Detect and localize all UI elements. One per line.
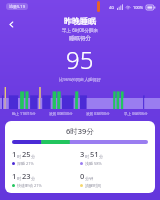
staticText: 流量5.19 <box>9 4 25 9</box>
staticText: 0 <box>80 171 85 181</box>
staticText: 25 <box>22 149 31 159</box>
staticText: 23 <box>22 171 31 181</box>
staticText: 比96%的同龄人睡得好 <box>59 77 101 83</box>
staticText: 3 <box>80 149 85 159</box>
staticText: 早上 06时06分 <box>124 111 148 116</box>
staticText: 晚上 11时15分 <box>12 111 36 116</box>
staticText: 1 <box>12 171 17 181</box>
button[interactable]: 1 <box>12 171 80 188</box>
staticText: 1 <box>12 149 17 159</box>
button[interactable]: 0 <box>80 171 148 188</box>
button[interactable]: 1 <box>12 149 80 166</box>
staticText: 昨晚睡眠 <box>64 16 96 26</box>
staticText: 凌晨 00时30分 <box>49 111 73 116</box>
staticText: 清醒时间 <box>85 183 101 188</box>
button[interactable]: 3 <box>80 149 148 166</box>
staticText: 快速眼动 21% <box>17 183 42 188</box>
staticText: 100% <box>133 5 144 10</box>
staticText: 95 <box>66 43 94 76</box>
staticText: 51 <box>90 149 99 159</box>
button[interactable]: Back <box>3 16 19 32</box>
staticText: 分 <box>99 154 104 159</box>
staticText: 浅睡 58% <box>85 161 102 166</box>
staticText: 分 <box>31 154 36 159</box>
staticText: 深睡 21% <box>17 161 34 166</box>
staticText: 6时39分 <box>66 126 94 136</box>
staticText: 凌晨 03时00分 <box>86 111 110 116</box>
staticText: 时 <box>85 154 90 159</box>
staticText: 早上 6时06分醒来 <box>62 27 98 33</box>
staticText: 4G <box>109 5 115 10</box>
staticText: 睡眠得分 <box>69 35 91 42</box>
staticText: 分钟 <box>85 176 94 181</box>
button[interactable]: 6时39分 <box>5 121 155 193</box>
staticText: 时 <box>17 176 22 181</box>
staticText: 时 <box>17 154 22 159</box>
staticText: 分 <box>31 176 36 181</box>
